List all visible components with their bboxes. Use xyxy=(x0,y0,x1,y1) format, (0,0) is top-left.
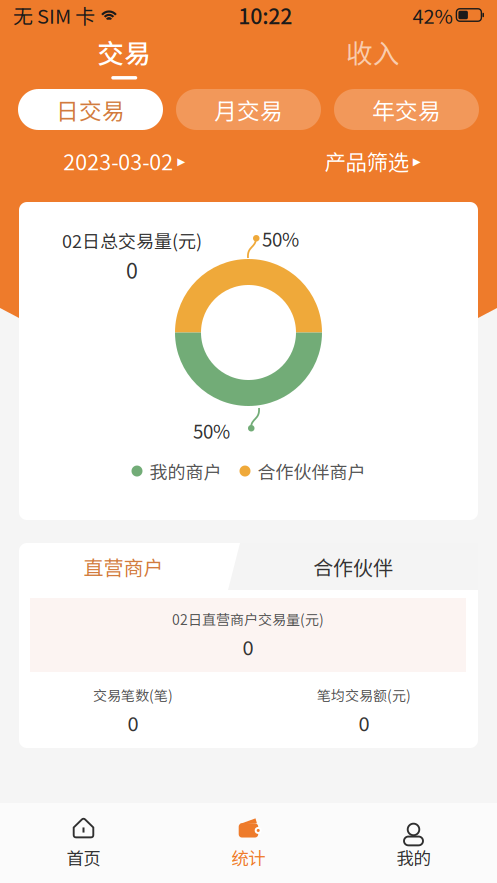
staticText: 月交易 xyxy=(214,93,283,126)
staticText: 合作伙伴 xyxy=(313,552,393,581)
button[interactable]: 首页 xyxy=(1,812,166,874)
button[interactable]: 合作伙伴 xyxy=(228,543,478,590)
staticText: ▸ xyxy=(413,152,421,170)
staticText: 统计 xyxy=(231,845,265,870)
button[interactable]: 月交易 xyxy=(176,89,321,130)
staticText: 50% xyxy=(193,417,230,444)
staticText: 0 xyxy=(242,632,253,661)
staticText: 我的商户 xyxy=(149,458,221,484)
staticText: 无 SIM 卡 xyxy=(13,0,95,29)
button[interactable]: 统计 xyxy=(166,812,331,874)
button[interactable]: 我的 xyxy=(331,812,496,874)
staticText: 年交易 xyxy=(372,93,441,126)
staticText: 02日总交易量(元) xyxy=(62,227,202,253)
staticText: 02日直营商户交易量(元) xyxy=(172,609,324,629)
staticText: ▸ xyxy=(177,152,185,170)
button[interactable]: 日交易 xyxy=(18,89,163,130)
staticText: 合作伙伴商户 xyxy=(257,458,365,484)
staticText: 交易笔数(笔) xyxy=(93,685,173,705)
button[interactable]: 2023-03-02 xyxy=(0,146,248,176)
staticText: 50% xyxy=(262,225,299,252)
staticText: 日交易 xyxy=(56,93,125,126)
button[interactable]: 收入 xyxy=(248,30,497,82)
button[interactable]: 交易 xyxy=(0,30,248,82)
staticText: 我的 xyxy=(396,845,430,870)
staticText: 0 xyxy=(358,708,369,737)
button[interactable]: 产品筛选 xyxy=(248,146,497,176)
staticText: 产品筛选 xyxy=(325,146,409,176)
staticText: 交易 xyxy=(97,32,151,71)
staticText: 42% xyxy=(412,0,452,29)
staticText: 10:22 xyxy=(238,0,292,30)
staticText: 0 xyxy=(127,708,138,737)
staticText: 首页 xyxy=(66,845,100,870)
staticText: 收入 xyxy=(346,32,400,71)
staticText: 笔均交易额(元) xyxy=(317,685,411,705)
button[interactable]: 年交易 xyxy=(334,89,479,130)
staticText: 0 xyxy=(126,254,138,285)
staticText: 直营商户 xyxy=(83,552,163,581)
button[interactable]: 直营商户 xyxy=(19,543,228,590)
staticText: 2023-03-02 xyxy=(63,146,173,176)
